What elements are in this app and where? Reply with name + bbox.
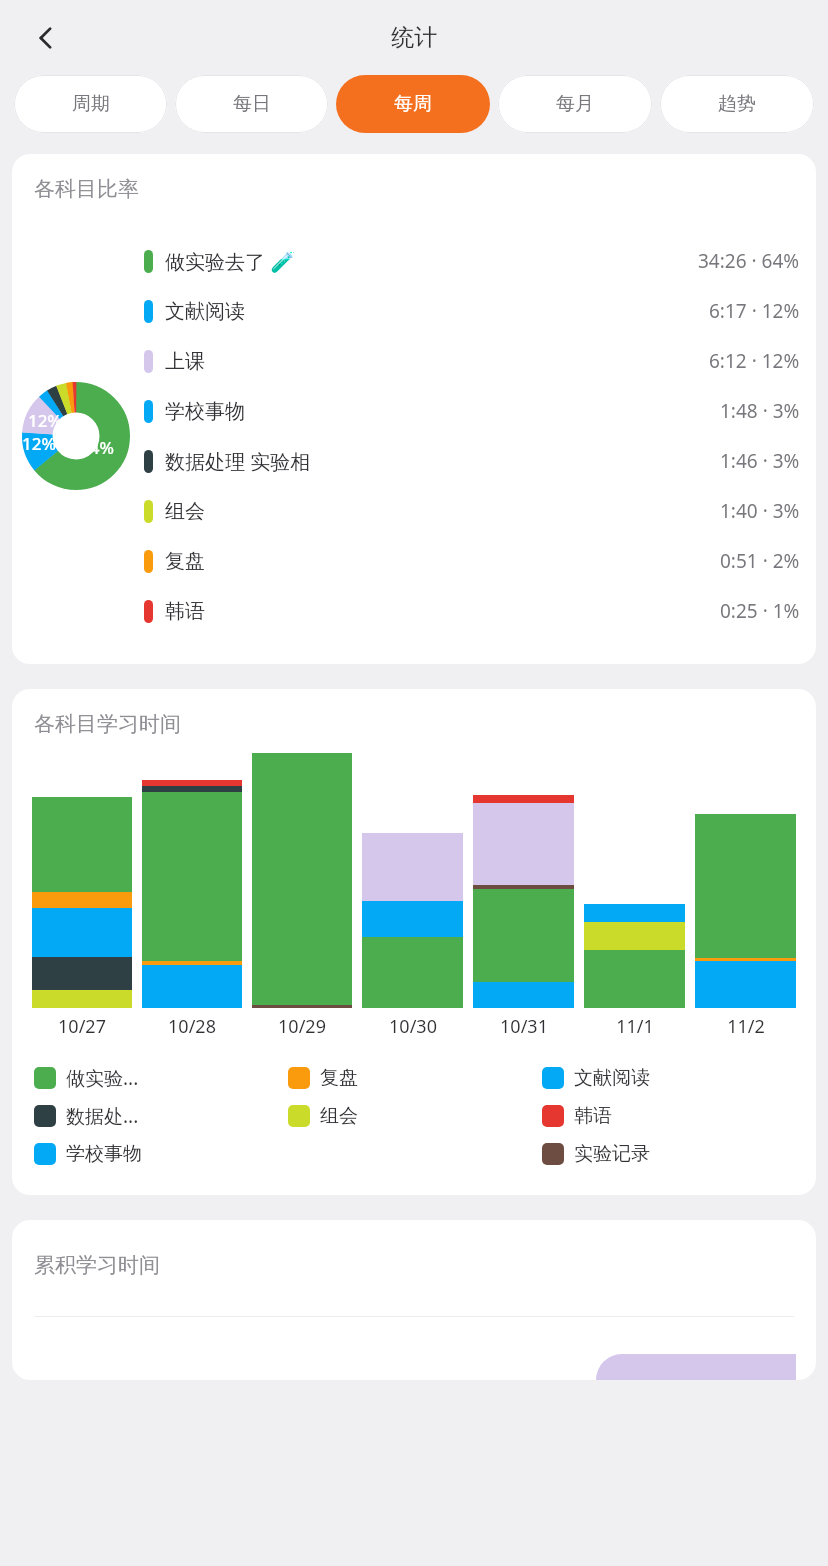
staticText: 做实验...	[66, 1065, 139, 1091]
button[interactable]	[584, 904, 685, 1008]
button[interactable]: 韩语	[144, 586, 800, 636]
staticText: 10/29	[278, 1014, 326, 1039]
button[interactable]: 趋势	[660, 75, 814, 133]
button[interactable]: 上课	[144, 336, 800, 386]
staticText: 0:51 · 2%	[720, 548, 800, 574]
staticText: 每月	[556, 92, 594, 116]
button[interactable]	[473, 795, 574, 1008]
staticText: 统计	[391, 23, 437, 52]
button[interactable]	[252, 753, 352, 1008]
staticText: 10/31	[500, 1014, 548, 1039]
staticText: 韩语	[165, 599, 205, 624]
button[interactable]: 周期	[14, 75, 167, 133]
staticText: 文献阅读	[165, 299, 245, 324]
button[interactable]: 组会	[144, 486, 800, 536]
button[interactable]: 做实验...	[34, 1059, 288, 1097]
button[interactable]: Back	[18, 10, 74, 66]
staticText: 数据处理 实验相	[165, 448, 311, 475]
staticText: 0:25 · 1%	[720, 598, 800, 624]
staticText: 文献阅读	[574, 1066, 650, 1090]
staticText: 趋势	[718, 92, 756, 116]
staticText: 64%	[80, 436, 114, 459]
staticText: 实验记录	[574, 1142, 650, 1166]
staticText: 各科目学习时间	[34, 711, 181, 737]
button[interactable]	[362, 833, 463, 1008]
button[interactable]: 做实验去了 🧪	[144, 236, 800, 286]
staticText: 学校事物	[165, 399, 245, 424]
staticText: 组会	[165, 499, 205, 524]
staticText: 累积学习时间	[34, 1252, 160, 1278]
staticText: 1:48 · 3%	[720, 398, 800, 424]
staticText: 11/2	[727, 1014, 765, 1039]
staticText: 每周	[394, 92, 432, 116]
button[interactable]	[32, 797, 132, 1008]
button[interactable]: 文献阅读	[542, 1059, 796, 1097]
button[interactable]: 组会	[288, 1097, 542, 1135]
button[interactable]: 文献阅读	[144, 286, 800, 336]
staticText: 1:46 · 3%	[720, 448, 800, 474]
staticText: 12%	[22, 432, 56, 455]
staticText: 11/1	[616, 1014, 654, 1039]
button[interactable]: 每周	[336, 75, 490, 133]
staticText: 组会	[320, 1104, 358, 1128]
staticText: 10/27	[58, 1014, 106, 1039]
staticText: 做实验去了 🧪	[165, 248, 296, 275]
button[interactable]: 数据处理 实验相	[144, 436, 800, 486]
button[interactable]: 复盘	[288, 1059, 542, 1097]
button[interactable]: 学校事物	[34, 1135, 288, 1173]
staticText: 10/30	[389, 1014, 437, 1039]
staticText: 韩语	[574, 1104, 612, 1128]
staticText: 各科目比率	[34, 176, 139, 202]
staticText: 6:12 · 12%	[709, 348, 800, 374]
staticText: 周期	[72, 92, 110, 116]
button[interactable]: 韩语	[542, 1097, 796, 1135]
staticText: 复盘	[320, 1066, 358, 1090]
button[interactable]	[695, 814, 796, 1008]
button[interactable]: 每日	[175, 75, 328, 133]
button[interactable]: 实验记录	[542, 1135, 796, 1173]
staticText: 1:40 · 3%	[720, 498, 800, 524]
staticText: 数据处...	[66, 1103, 139, 1129]
button[interactable]: 每月	[498, 75, 652, 133]
button[interactable]: 数据处...	[34, 1097, 288, 1135]
staticText: 学校事物	[66, 1142, 142, 1166]
staticText: 10/28	[168, 1014, 216, 1039]
button[interactable]	[142, 780, 242, 1008]
button[interactable]: 学校事物	[144, 386, 800, 436]
staticText: 上课	[165, 349, 205, 374]
staticText: 12%	[28, 409, 62, 432]
staticText: 34:26 · 64%	[698, 248, 800, 274]
staticText: 复盘	[165, 549, 205, 574]
staticText: 6:17 · 12%	[709, 298, 800, 324]
button[interactable]: 复盘	[144, 536, 800, 586]
staticText: 每日	[233, 92, 271, 116]
